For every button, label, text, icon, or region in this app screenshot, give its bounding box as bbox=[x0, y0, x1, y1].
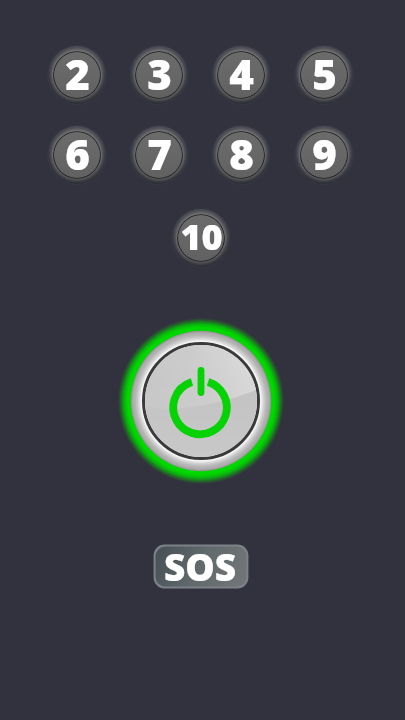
button[interactable]: 3 bbox=[122, 38, 196, 112]
button[interactable]: 10 bbox=[164, 201, 238, 275]
staticText: 3 bbox=[147, 45, 172, 102]
button[interactable]: 9 bbox=[287, 118, 361, 192]
button[interactable]: 2 bbox=[40, 38, 114, 112]
button[interactable]: Power bbox=[106, 306, 296, 496]
staticText: 7 bbox=[147, 125, 172, 182]
staticText: 5 bbox=[312, 45, 337, 102]
staticText: 10 bbox=[180, 212, 223, 261]
button[interactable]: 5 bbox=[287, 38, 361, 112]
staticText: 8 bbox=[229, 125, 254, 182]
button[interactable]: 7 bbox=[122, 118, 196, 192]
staticText: 2 bbox=[65, 45, 90, 102]
staticText: SOS bbox=[164, 541, 237, 586]
staticText: 9 bbox=[312, 125, 337, 182]
staticText: 6 bbox=[65, 125, 90, 182]
button[interactable]: 6 bbox=[40, 118, 114, 192]
button[interactable]: SOS bbox=[153, 544, 249, 589]
button[interactable]: 8 bbox=[204, 118, 278, 192]
button[interactable]: 4 bbox=[204, 38, 278, 112]
staticText: 4 bbox=[229, 45, 254, 102]
